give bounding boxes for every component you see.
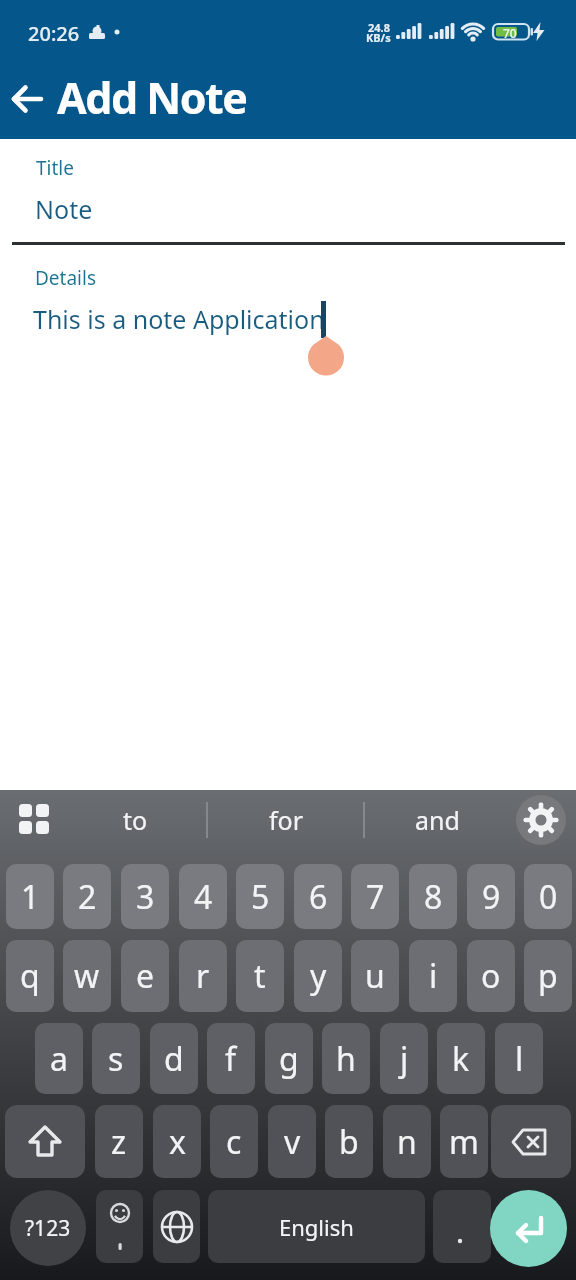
button[interactable]: e — [121, 940, 169, 1012]
staticText: 6 — [309, 875, 328, 919]
staticText: 2 — [78, 875, 97, 919]
button[interactable]: r — [179, 940, 227, 1012]
staticText: i — [429, 954, 438, 998]
button[interactable]: English — [208, 1190, 425, 1263]
staticText: r — [196, 954, 210, 998]
staticText: b — [339, 1120, 359, 1164]
button[interactable]: t — [236, 940, 284, 1012]
staticText: English — [279, 1212, 354, 1242]
staticText: 24.8 — [368, 20, 390, 35]
button[interactable] — [516, 795, 566, 845]
staticText: h — [336, 1037, 356, 1081]
staticText: Add Note — [57, 68, 247, 127]
button[interactable]: 5 — [236, 864, 284, 929]
staticText: z — [111, 1120, 127, 1164]
staticText: 9 — [482, 875, 501, 919]
staticText: v — [284, 1120, 301, 1164]
button[interactable] — [19, 804, 49, 834]
button[interactable]: x — [153, 1105, 201, 1178]
button[interactable]: a — [35, 1023, 83, 1094]
button[interactable]: 7 — [351, 864, 399, 929]
staticText: 5 — [251, 875, 270, 919]
button[interactable]: 0 — [524, 864, 572, 929]
staticText: for — [269, 803, 304, 837]
staticText: c — [226, 1120, 242, 1164]
button[interactable]: g — [265, 1023, 313, 1094]
staticText: a — [50, 1037, 68, 1081]
staticText: KB/s — [366, 30, 391, 45]
button[interactable]: j — [380, 1023, 428, 1094]
staticText: Details — [35, 265, 97, 291]
button[interactable]: v — [268, 1105, 316, 1178]
button[interactable] — [433, 1190, 491, 1263]
staticText: 4 — [194, 875, 213, 919]
staticText: 20:26 — [28, 20, 80, 47]
button[interactable]: for — [226, 795, 346, 845]
staticText: e — [136, 954, 155, 998]
staticText: s — [108, 1037, 124, 1081]
button[interactable]: 1 — [6, 864, 54, 929]
button[interactable]: m — [440, 1105, 488, 1178]
button[interactable] — [96, 1190, 143, 1263]
button[interactable] — [12, 85, 44, 113]
button[interactable]: o — [467, 940, 515, 1012]
staticText: q — [20, 954, 40, 998]
button[interactable]: b — [325, 1105, 373, 1178]
staticText: and — [415, 803, 460, 837]
button[interactable]: n — [383, 1105, 431, 1178]
button[interactable] — [491, 1105, 571, 1178]
staticText: m — [449, 1120, 479, 1164]
staticText: t — [254, 954, 266, 998]
staticText: d — [164, 1037, 184, 1081]
staticText: k — [452, 1037, 470, 1081]
button[interactable] — [153, 1190, 200, 1263]
button[interactable]: f — [207, 1023, 255, 1094]
button[interactable]: to — [75, 795, 195, 845]
staticText: ?123 — [25, 1214, 71, 1243]
button[interactable]: l — [495, 1023, 543, 1094]
staticText: o — [481, 954, 501, 998]
staticText: g — [279, 1037, 299, 1081]
button[interactable]: y — [294, 940, 342, 1012]
staticText: l — [515, 1037, 524, 1081]
staticText: Note — [35, 192, 93, 226]
button[interactable]: z — [95, 1105, 143, 1178]
button[interactable]: 6 — [294, 864, 342, 929]
staticText: p — [538, 954, 558, 998]
button[interactable]: 3 — [121, 864, 169, 929]
staticText: 0 — [539, 875, 558, 919]
button[interactable]: s — [92, 1023, 140, 1094]
staticText: u — [365, 954, 385, 998]
staticText: to — [123, 803, 148, 837]
button[interactable]: 8 — [409, 864, 457, 929]
staticText: w — [74, 954, 100, 998]
button[interactable]: 9 — [467, 864, 515, 929]
staticText: j — [400, 1037, 409, 1081]
button[interactable] — [490, 1190, 567, 1267]
staticText: x — [169, 1120, 186, 1164]
button[interactable]: and — [377, 795, 497, 845]
button[interactable]: c — [210, 1105, 258, 1178]
staticText: y — [310, 954, 327, 998]
button[interactable] — [5, 1105, 85, 1178]
staticText: This is a note Application — [33, 302, 325, 336]
button[interactable]: q — [6, 940, 54, 1012]
button[interactable]: 2 — [63, 864, 111, 929]
staticText: Title — [36, 155, 74, 181]
button[interactable]: ?123 — [10, 1190, 86, 1266]
button[interactable]: d — [150, 1023, 198, 1094]
button[interactable]: u — [351, 940, 399, 1012]
button[interactable]: h — [322, 1023, 370, 1094]
staticText: 3 — [136, 875, 155, 919]
button[interactable]: 4 — [179, 864, 227, 929]
staticText: 7 — [366, 875, 385, 919]
staticText: 1 — [21, 875, 40, 919]
button[interactable]: k — [437, 1023, 485, 1094]
button[interactable]: i — [409, 940, 457, 1012]
staticText: 8 — [424, 875, 443, 919]
staticText: 70 — [503, 25, 517, 41]
button[interactable]: w — [63, 940, 111, 1012]
staticText: f — [225, 1037, 237, 1081]
button[interactable]: p — [524, 940, 572, 1012]
staticText: n — [397, 1120, 417, 1164]
